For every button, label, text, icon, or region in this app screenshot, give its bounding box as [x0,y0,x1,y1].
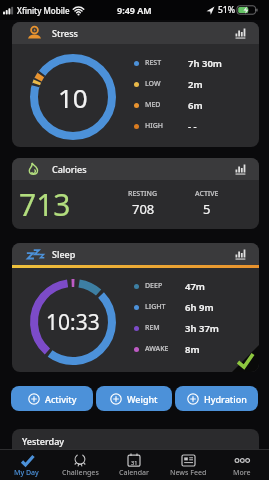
staticText: News Feed [170,468,207,478]
staticText: Yesterday [22,435,65,447]
button[interactable]: Weight [96,386,172,411]
staticText: LIGHT [145,302,166,312]
staticText: 9:49 AM [117,4,152,16]
button[interactable]: More [215,450,269,480]
staticText: Sleep [52,248,76,260]
button[interactable]: Hydration [175,386,258,411]
staticText: 31 [131,459,138,466]
staticText: MED [145,100,161,110]
staticText: 10 [58,80,88,115]
button[interactable]: News Feed [161,450,215,480]
staticText: Xfinity Mobile [17,5,70,16]
button[interactable]: My Day [0,450,53,480]
staticText: 6h 9m [185,301,214,314]
staticText: Calories [52,163,87,175]
staticText: HIGH [145,121,164,131]
button[interactable]: Challenges [53,450,107,480]
staticText: Hydration [204,393,247,405]
staticText: 51% [218,4,235,16]
staticText: 2m [188,78,203,91]
staticText: Stress [52,27,78,39]
staticText: RESTING [128,189,158,199]
staticText: Weight [127,393,158,405]
staticText: REM [145,323,160,333]
staticText: 47m [185,280,205,293]
staticText: DEEP [145,281,163,291]
button[interactable]: Calories [12,158,259,229]
button[interactable]: Sleep [12,243,259,372]
staticText: - - [188,120,197,133]
button[interactable]: Activity [11,386,93,411]
staticText: Activity [45,393,77,405]
staticText: 708 [132,200,155,218]
staticText: 713 [19,184,71,225]
staticText: 8m [185,343,200,356]
staticText: 5 [203,200,211,218]
button[interactable]: 31 [107,450,161,480]
button[interactable]: Stress [12,22,259,147]
staticText: AWAKE [145,344,169,354]
staticText: 7h 30m [188,57,222,70]
staticText: More [233,468,251,478]
staticText: ACTIVE [195,189,219,199]
staticText: REST [145,58,162,68]
staticText: LOW [145,79,161,89]
staticText: 10:33 [46,308,100,337]
staticText: Calendar [119,468,150,478]
staticText: Challenges [62,468,99,478]
staticText: 6m [188,99,203,112]
staticText: 3h 37m [185,322,219,335]
staticText: My Day [14,468,39,478]
